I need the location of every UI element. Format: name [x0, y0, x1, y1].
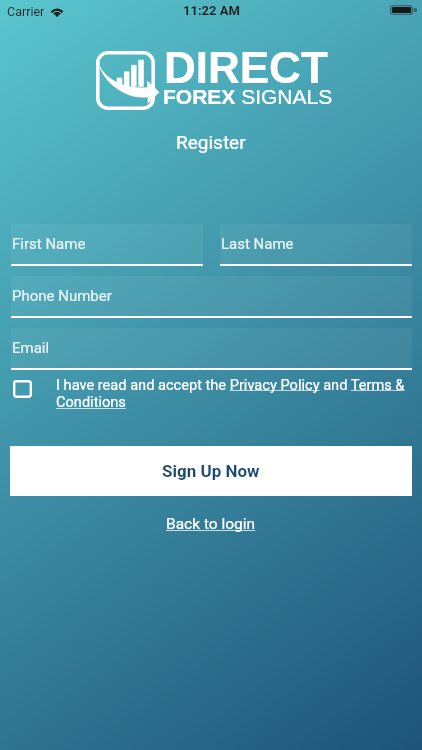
staticText: Sign Up Now	[162, 461, 260, 481]
button[interactable]: Back to login	[166, 515, 256, 533]
staticText: DIRECT	[164, 43, 328, 92]
staticText: Phone Number	[12, 287, 112, 305]
staticText: Email	[12, 339, 50, 357]
button[interactable]: Email	[11, 328, 412, 370]
button[interactable]: I have read and accept the Privacy Polic…	[56, 376, 414, 411]
staticText: First Name	[12, 235, 86, 253]
button[interactable]: First Name	[11, 224, 203, 266]
staticText: FOREX SIGNALS	[163, 85, 333, 108]
staticText: Carrier	[7, 4, 45, 19]
button[interactable]: Sign Up Now	[10, 446, 412, 496]
button[interactable]: Last Name	[220, 224, 412, 266]
button[interactable]: Accept terms checkbox	[13, 380, 32, 398]
staticText: Register	[176, 131, 246, 153]
staticText: Last Name	[221, 235, 294, 253]
staticText: 11:22 AM	[183, 3, 240, 18]
button[interactable]: Phone Number	[11, 276, 412, 318]
